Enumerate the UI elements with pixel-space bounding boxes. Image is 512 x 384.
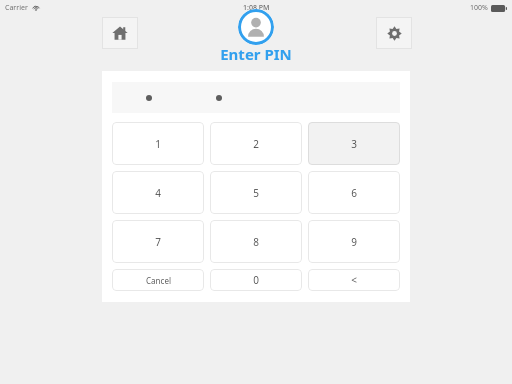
staticText: 0 (253, 273, 259, 287)
button[interactable]: 2 (210, 122, 302, 165)
staticText: 9 (351, 235, 357, 249)
staticText: 1:08 PM (243, 3, 270, 13)
button[interactable]: 8 (210, 220, 302, 263)
staticText: 7 (155, 235, 161, 249)
button[interactable]: 9 (308, 220, 400, 263)
staticText: 100% (470, 3, 488, 13)
staticText: 4 (155, 186, 161, 200)
button[interactable]: 1 (112, 122, 204, 165)
button[interactable]: 4 (112, 171, 204, 214)
button[interactable]: < (308, 269, 400, 291)
staticText: 5 (253, 186, 259, 200)
staticText: Carrier (5, 3, 28, 13)
staticText: 1 (155, 137, 161, 151)
button[interactable]: Account (238, 9, 274, 45)
staticText: 2 (253, 137, 259, 151)
button[interactable]: 3 (308, 122, 400, 165)
staticText: < (351, 273, 357, 287)
staticText: Enter PIN (0, 44, 512, 64)
button[interactable]: Cancel (112, 269, 204, 291)
button[interactable]: Home (102, 17, 138, 49)
staticText: 3 (351, 137, 357, 151)
staticText: 8 (253, 235, 259, 249)
button[interactable]: 0 (210, 269, 302, 291)
button[interactable]: 7 (112, 220, 204, 263)
staticText: 6 (351, 186, 357, 200)
button[interactable]: 5 (210, 171, 302, 214)
button[interactable]: Settings (376, 17, 412, 49)
staticText: Cancel (146, 275, 171, 286)
button[interactable]: 6 (308, 171, 400, 214)
